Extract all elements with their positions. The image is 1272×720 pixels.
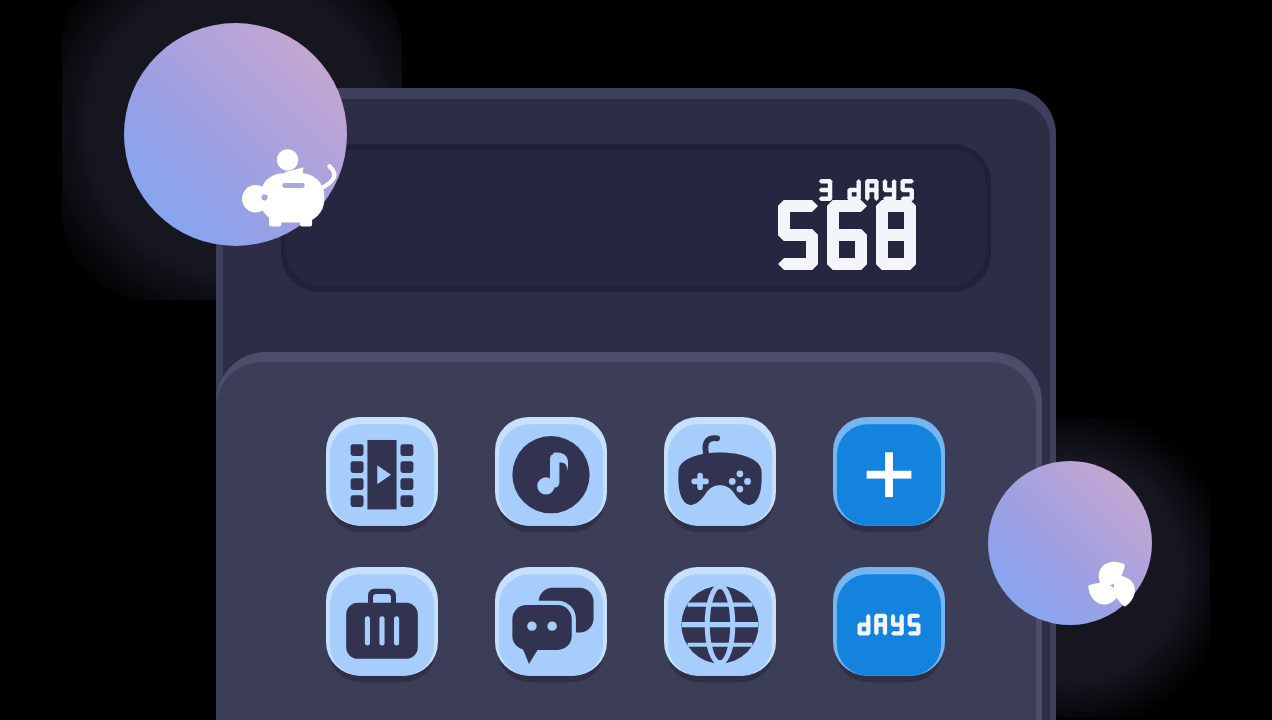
button[interactable]: Add app (833, 417, 945, 529)
button[interactable]: Music (495, 417, 607, 529)
button[interactable]: Days counter (833, 567, 945, 679)
button[interactable]: Browser (664, 567, 776, 679)
button[interactable]: Eco mode (988, 461, 1152, 625)
button[interactable]: Video (326, 417, 438, 529)
button[interactable]: Messages (495, 567, 607, 679)
button[interactable]: Work (326, 567, 438, 679)
button[interactable]: Games (664, 417, 776, 529)
button[interactable]: Savings (124, 23, 347, 246)
